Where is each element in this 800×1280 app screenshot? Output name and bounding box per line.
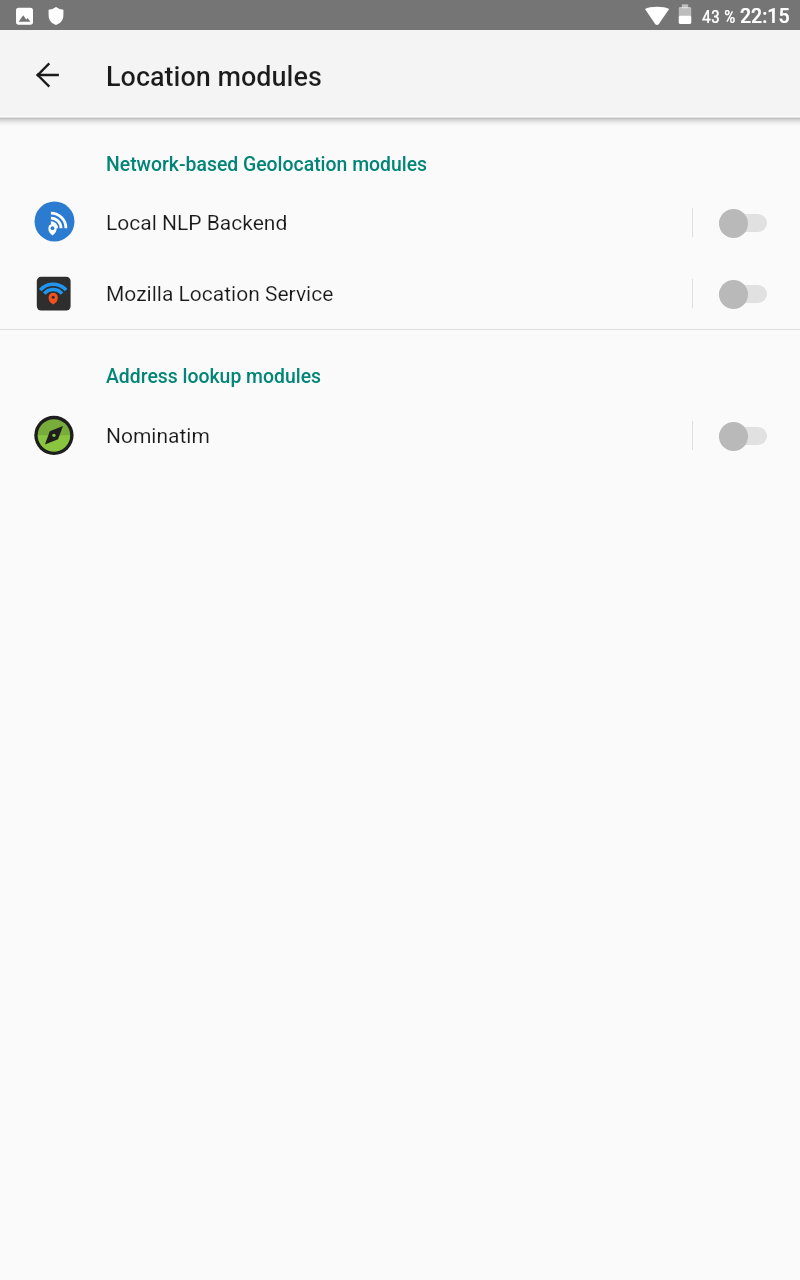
button[interactable]: Mozilla Location Service [0,259,800,330]
staticText: Network-based Geolocation modules [106,153,428,176]
staticText: Location modules [106,61,322,93]
button[interactable]: Toggle Nominatim [705,412,780,460]
button[interactable]: Toggle Local NLP Backend [705,199,780,247]
staticText: Address lookup modules [106,365,322,388]
button[interactable]: Toggle Mozilla Location Service [705,270,780,318]
button[interactable]: Nominatim [0,401,800,472]
staticText: Mozilla Location Service [106,282,334,307]
staticText: Local NLP Backend [106,211,288,236]
button[interactable]: Back [24,51,72,99]
staticText: 43 % [702,6,736,27]
staticText: Nominatim [106,424,210,449]
staticText: 22:15 [740,5,790,28]
button[interactable]: Local NLP Backend [0,188,800,259]
